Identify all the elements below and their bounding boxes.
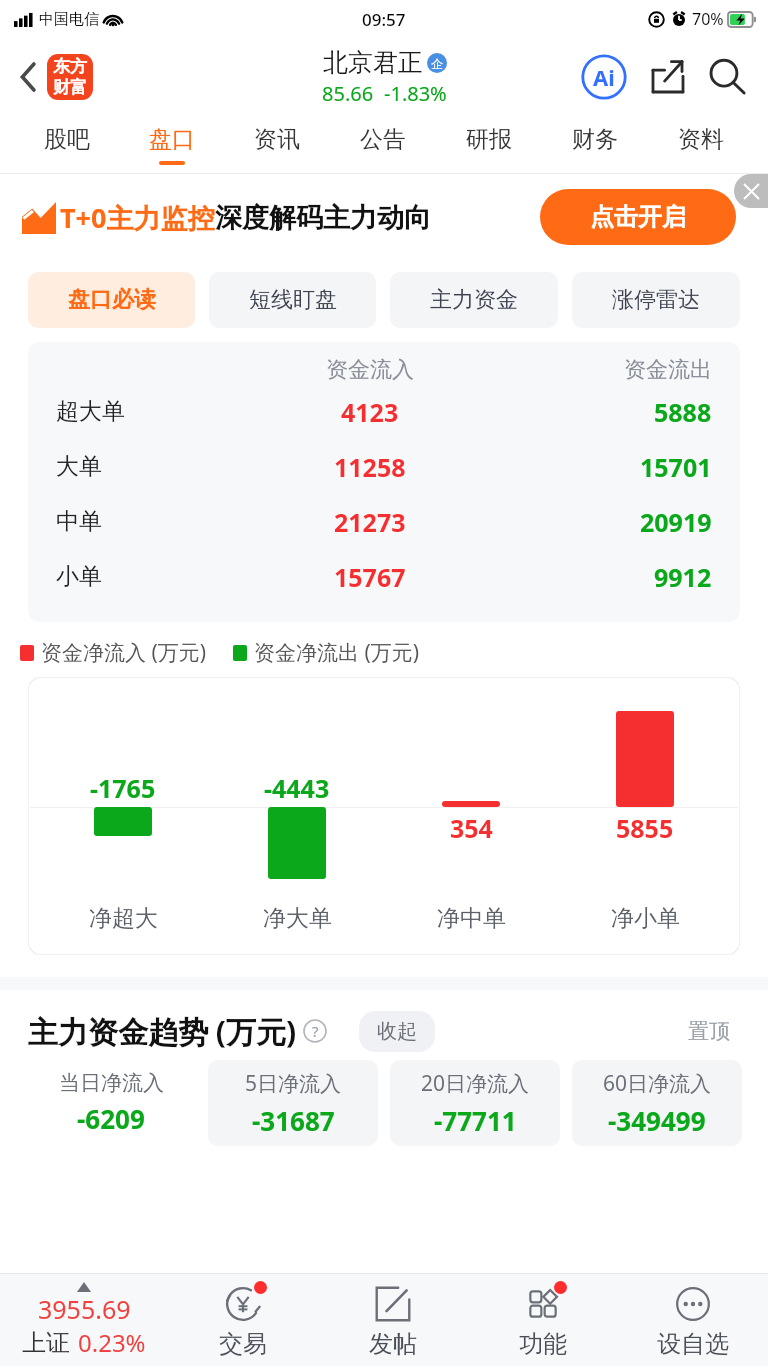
button[interactable]: 主力资金: [390, 272, 558, 328]
button[interactable]: 公告: [330, 116, 436, 174]
staticText: 11258: [334, 450, 406, 484]
button[interactable]: Close: [734, 174, 768, 208]
staticText: -1765: [90, 771, 156, 805]
staticText: -6209: [77, 1101, 145, 1136]
staticText: 置顶: [688, 1018, 730, 1044]
staticText: 净中单: [437, 904, 506, 933]
staticText: 当日净流入: [59, 1070, 164, 1096]
staticText: 9912: [654, 560, 712, 594]
button[interactable]: 股吧: [14, 116, 119, 174]
button[interactable]: 财务: [542, 116, 648, 174]
staticText: 超大单: [56, 397, 125, 426]
button[interactable]: 发帖: [318, 1274, 468, 1366]
staticText: 净小单: [611, 904, 680, 933]
staticText: 资金流出: [624, 356, 712, 384]
button[interactable]: 资料: [648, 116, 754, 174]
staticText: 财务: [572, 125, 618, 154]
staticText: 深度解码主力动向: [215, 201, 431, 235]
button[interactable]: 当日净流入: [26, 1060, 196, 1146]
button[interactable]: Help: [303, 1019, 327, 1043]
staticText: 财富: [53, 77, 87, 98]
staticText: 0.23%: [78, 1326, 146, 1359]
button[interactable]: 5日净流入: [208, 1060, 378, 1146]
staticText: 中国电信: [39, 10, 99, 29]
staticText: 09:57: [362, 8, 406, 31]
staticText: 收起: [377, 1019, 417, 1044]
staticText: 研报: [466, 125, 512, 154]
staticText: 资金净流出 (万元): [254, 638, 420, 667]
staticText: -77711: [434, 1103, 517, 1138]
staticText: 交易: [219, 1329, 267, 1359]
staticText: -4443: [264, 771, 330, 805]
staticText: 盘口必读: [68, 286, 156, 314]
staticText: 东方: [53, 56, 87, 77]
button[interactable]: 60日净流入: [572, 1060, 742, 1146]
staticText: 净大单: [263, 904, 332, 933]
staticText: 资金流入: [326, 356, 414, 384]
staticText: 企: [431, 56, 443, 71]
button[interactable]: 收起: [359, 1011, 435, 1052]
button[interactable]: 点击开启: [540, 189, 736, 245]
staticText: 15701: [640, 450, 712, 484]
staticText: -1.83%: [384, 80, 447, 107]
staticText: 20日净流入: [421, 1069, 530, 1098]
staticText: 北京君正: [323, 47, 423, 78]
staticText: 资金净流入 (万元): [41, 638, 207, 667]
staticText: 功能: [519, 1329, 567, 1359]
button[interactable]: AI: [580, 53, 628, 101]
button[interactable]: Search: [704, 54, 750, 100]
staticText: 15767: [334, 560, 406, 594]
staticText: 60日净流入: [603, 1069, 712, 1098]
staticText: 公告: [360, 125, 406, 154]
staticText: 85.66: [322, 80, 374, 107]
button[interactable]: 盘口: [119, 116, 224, 174]
staticText: 5855: [616, 811, 674, 845]
button[interactable]: Share: [646, 55, 690, 99]
staticText: 短线盯盘: [249, 286, 337, 314]
staticText: 20919: [640, 505, 712, 539]
button[interactable]: 资讯: [224, 116, 330, 174]
button[interactable]: 功能: [468, 1274, 618, 1366]
staticText: 设自选: [657, 1329, 729, 1359]
button[interactable]: 设自选: [618, 1274, 768, 1366]
staticText: 涨停雷达: [612, 286, 700, 314]
staticText: 5888: [654, 395, 712, 429]
staticText: 资料: [678, 125, 724, 154]
button[interactable]: Back: [14, 48, 99, 106]
staticText: 小单: [56, 562, 102, 591]
button[interactable]: 20日净流入: [390, 1060, 560, 1146]
staticText: 5日净流入: [245, 1069, 342, 1098]
staticText: 资讯: [254, 125, 300, 154]
staticText: 354: [450, 811, 493, 845]
staticText: -31687: [252, 1103, 335, 1138]
staticText: 净超大: [89, 904, 158, 933]
button[interactable]: 盘口必读: [28, 272, 195, 328]
staticText: 主力资金趋势 (万元): [28, 1011, 297, 1052]
staticText: 股吧: [44, 125, 90, 154]
staticText: 21273: [334, 505, 406, 539]
button[interactable]: 交易: [168, 1274, 318, 1366]
staticText: T+0主力监控: [60, 199, 215, 236]
staticText: 发帖: [369, 1329, 417, 1359]
staticText: 主力资金: [430, 286, 518, 314]
staticText: 4123: [341, 395, 399, 429]
staticText: 盘口: [149, 125, 195, 154]
staticText: 大单: [56, 452, 102, 481]
staticText: 70%: [692, 8, 724, 30]
staticText: 3955.69: [38, 1292, 131, 1326]
button[interactable]: 涨停雷达: [572, 272, 740, 328]
staticText: -349499: [608, 1103, 706, 1138]
button[interactable]: 3955.69: [0, 1274, 168, 1366]
staticText: 上证: [22, 1328, 70, 1358]
staticText: 中单: [56, 507, 102, 536]
button[interactable]: 研报: [436, 116, 542, 174]
staticText: Ai: [593, 62, 615, 92]
staticText: ?: [312, 1021, 319, 1041]
button[interactable]: 短线盯盘: [209, 272, 376, 328]
button[interactable]: 置顶: [674, 1010, 744, 1052]
staticText: 点击开启: [590, 202, 686, 232]
